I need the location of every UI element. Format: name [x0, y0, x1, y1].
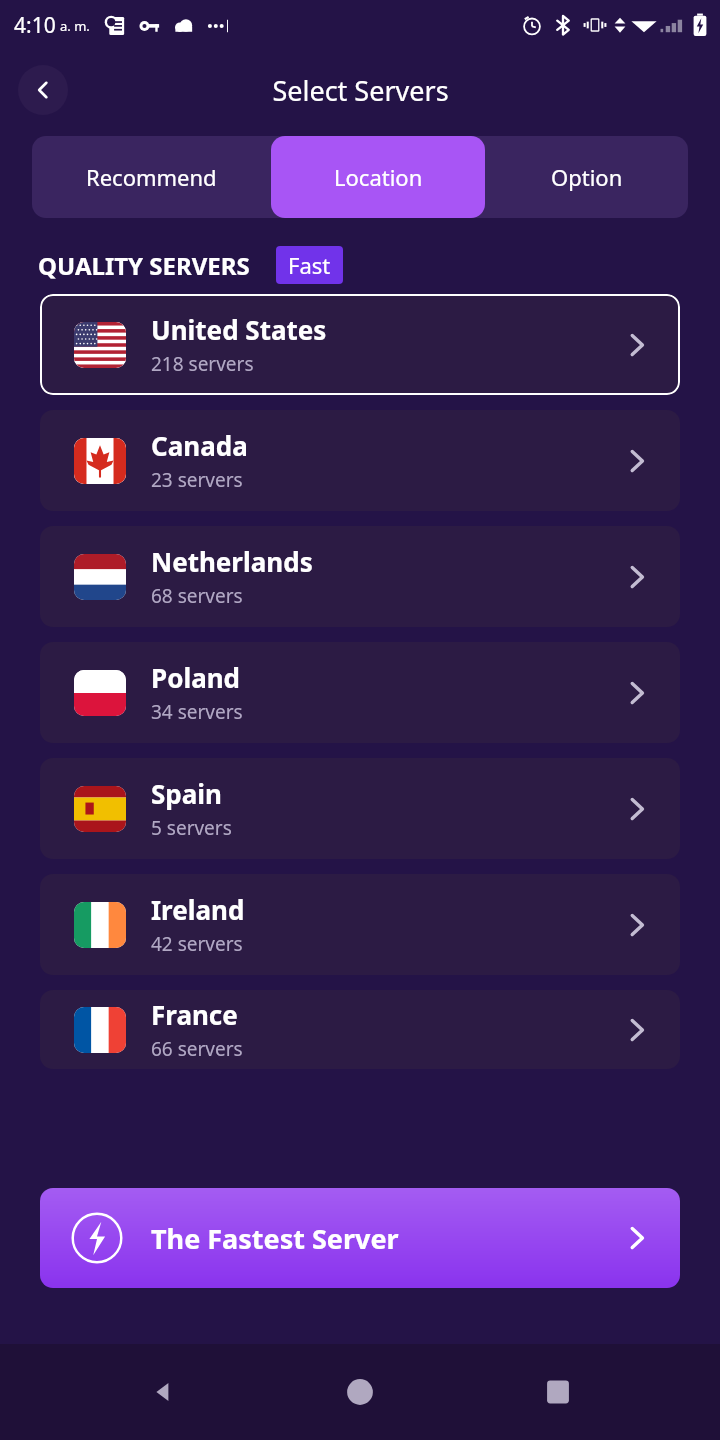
button[interactable]: Spain	[40, 758, 680, 859]
button[interactable]: United States	[40, 294, 680, 395]
button[interactable]: Netherlands	[40, 526, 680, 627]
staticText: Option	[551, 162, 623, 192]
staticText: 34 servers	[151, 699, 243, 725]
button[interactable]: France	[40, 990, 680, 1069]
staticText: 68 servers	[151, 583, 243, 609]
staticText: QUALITY SERVERS	[38, 249, 250, 282]
staticText: Poland	[151, 660, 241, 695]
staticText: France	[151, 997, 238, 1032]
staticText: a. m.	[60, 17, 90, 35]
button[interactable]: The Fastest Server	[40, 1188, 680, 1288]
staticText: 218 servers	[151, 351, 254, 377]
staticText: Canada	[151, 428, 248, 463]
staticText: Recommend	[86, 162, 217, 192]
staticText: 66 servers	[151, 1036, 243, 1062]
button[interactable]: Home	[325, 1357, 395, 1427]
button[interactable]: Recommend	[32, 136, 271, 218]
staticText: The Fastest Server	[151, 1220, 620, 1257]
staticText: 4:10	[14, 11, 56, 40]
staticText: Location	[334, 162, 423, 192]
button[interactable]: Back	[128, 1357, 198, 1427]
button[interactable]: Recents	[523, 1357, 593, 1427]
button[interactable]: Ireland	[40, 874, 680, 975]
button[interactable]: Canada	[40, 410, 680, 511]
staticText: Ireland	[151, 892, 245, 927]
staticText: Select Servers	[272, 72, 449, 109]
button[interactable]: Option	[485, 136, 688, 218]
staticText: 42 servers	[151, 931, 243, 957]
staticText: 23 servers	[151, 467, 243, 493]
button[interactable]: Poland	[40, 642, 680, 743]
button[interactable]: Back	[18, 65, 68, 115]
staticText: 5 servers	[151, 815, 232, 841]
staticText: Spain	[151, 776, 223, 811]
staticText: Netherlands	[151, 544, 313, 579]
staticText: Fast	[288, 250, 331, 280]
button[interactable]: Location	[271, 136, 485, 218]
staticText: United States	[151, 312, 327, 347]
